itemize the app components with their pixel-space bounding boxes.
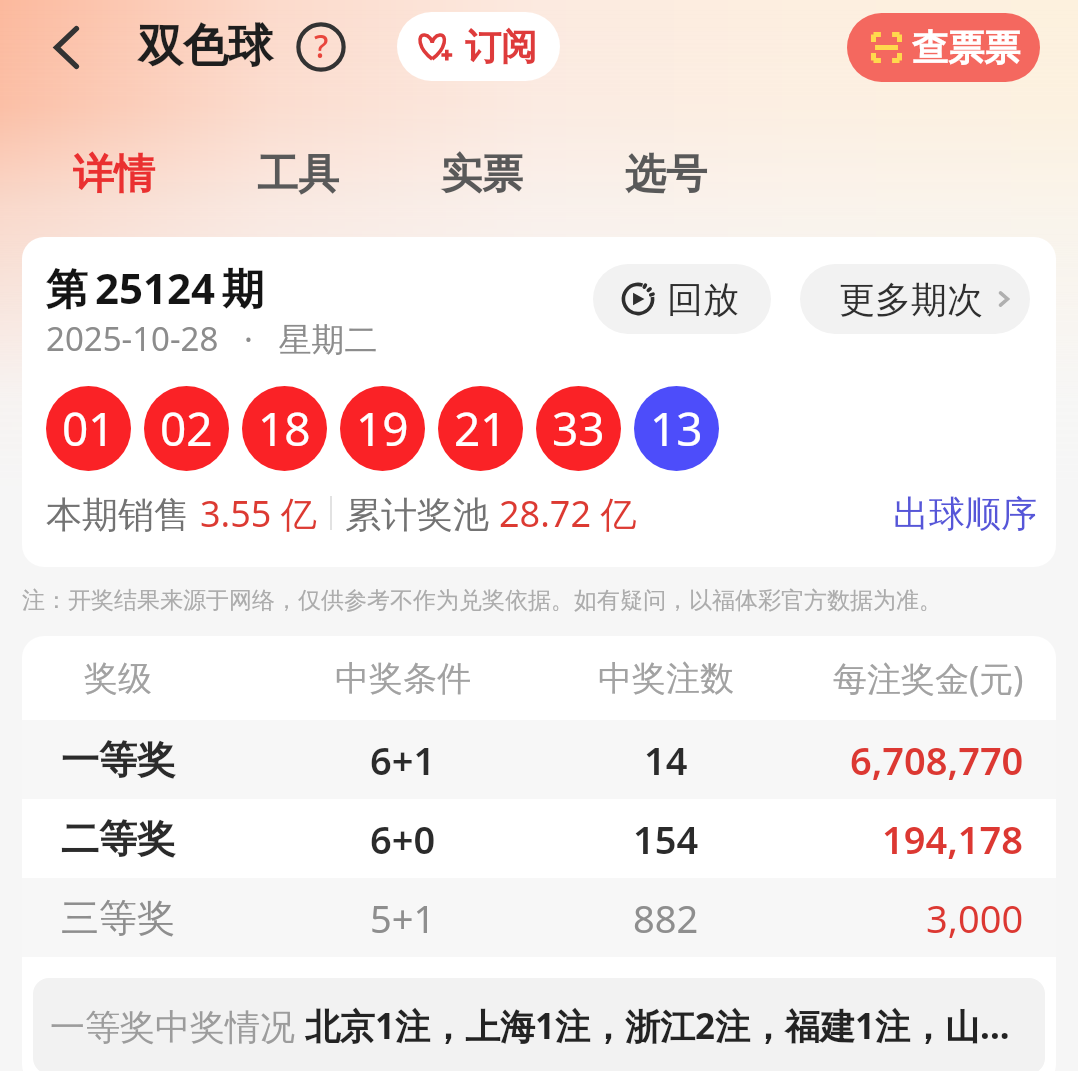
staticText: 累计奖池 bbox=[345, 489, 499, 538]
staticText: 更多期次 bbox=[839, 277, 983, 322]
staticText: 出球顺序 bbox=[893, 491, 1037, 536]
staticText: 本期销售 bbox=[46, 489, 200, 538]
staticText: 3.55 亿 bbox=[200, 489, 317, 538]
button[interactable]: 实票 bbox=[420, 133, 544, 217]
staticText: 5+1 bbox=[370, 892, 436, 944]
button[interactable]: 工具 bbox=[236, 133, 360, 217]
staticText: 每注奖金(元) bbox=[833, 655, 1024, 701]
staticText: 北京1注，上海1注，浙江2注，福建1注，山... bbox=[305, 1002, 1010, 1050]
staticText: 3,000 bbox=[926, 892, 1024, 944]
button[interactable]: 查票票 bbox=[847, 13, 1040, 82]
button[interactable]: 选号 bbox=[604, 133, 728, 217]
staticText: 第 25124 期 bbox=[46, 259, 265, 316]
button[interactable]: 出球顺序 bbox=[886, 487, 1044, 539]
staticText: 选号 bbox=[625, 149, 707, 201]
staticText: 实票 bbox=[441, 149, 523, 201]
staticText: 02 bbox=[160, 397, 213, 460]
button[interactable]: 订阅 bbox=[397, 12, 560, 81]
button[interactable]: 详情 bbox=[52, 133, 176, 217]
staticText: 6+1 bbox=[370, 734, 436, 786]
staticText: 三等奖 bbox=[61, 894, 175, 942]
button[interactable]: 更多期次 bbox=[800, 264, 1030, 334]
staticText: 注：开奖结果来源于网络，仅供参考不作为兑奖依据。如有疑问，以福体彩官方数据为准。 bbox=[22, 586, 942, 615]
staticText: 详情 bbox=[73, 149, 155, 201]
staticText: 奖级 bbox=[84, 657, 152, 700]
staticText: 194,178 bbox=[882, 813, 1024, 865]
staticText: 01 bbox=[62, 397, 115, 460]
staticText: 6,708,770 bbox=[850, 734, 1024, 786]
staticText: 一等奖中奖情况 bbox=[50, 1002, 305, 1050]
staticText: 中奖注数 bbox=[598, 657, 734, 700]
button[interactable]: 一等奖中奖情况 bbox=[33, 978, 1045, 1071]
staticText: 查票票 bbox=[912, 25, 1020, 70]
staticText: 回放 bbox=[667, 277, 739, 322]
staticText: 双色球 bbox=[138, 18, 273, 75]
staticText: 13 bbox=[650, 397, 703, 460]
button[interactable]: 三等奖 bbox=[22, 878, 1056, 957]
staticText: ? bbox=[314, 24, 329, 68]
staticText: 中奖条件 bbox=[335, 657, 471, 700]
staticText: 154 bbox=[633, 813, 699, 865]
staticText: 19 bbox=[356, 397, 409, 460]
staticText: 33 bbox=[552, 397, 605, 460]
button[interactable]: 二等奖 bbox=[22, 799, 1056, 878]
button[interactable]: Help bbox=[288, 14, 354, 80]
button[interactable]: 回放 bbox=[593, 264, 771, 334]
staticText: 二等奖 bbox=[61, 815, 175, 863]
staticText: 一等奖 bbox=[61, 736, 175, 784]
button[interactable]: Back bbox=[26, 7, 106, 87]
staticText: 18 bbox=[258, 397, 311, 460]
staticText: 2025-10-28 · 星期二 bbox=[46, 316, 378, 361]
staticText: 21 bbox=[454, 397, 507, 460]
button[interactable]: 一等奖 bbox=[22, 720, 1056, 799]
staticText: 6+0 bbox=[370, 813, 436, 865]
staticText: 14 bbox=[644, 734, 688, 786]
staticText: 882 bbox=[633, 892, 699, 944]
staticText: 订阅 bbox=[465, 24, 537, 69]
staticText: 工具 bbox=[257, 149, 339, 201]
staticText: 28.72 亿 bbox=[499, 489, 637, 538]
